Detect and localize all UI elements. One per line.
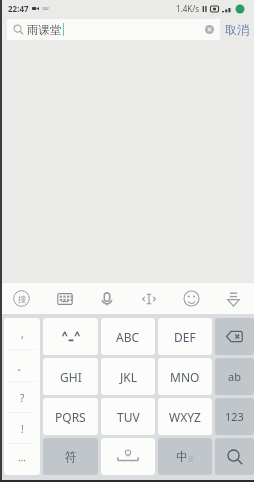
button[interactable]: Move cursor xyxy=(128,283,170,314)
staticText: TUV xyxy=(117,409,140,425)
staticText: 22:47 xyxy=(8,3,29,14)
staticText: WXYZ xyxy=(169,409,201,425)
button[interactable]: Clear text xyxy=(203,23,216,36)
button[interactable]: Keyboard layout xyxy=(43,283,86,314)
staticText: 1.4K/s xyxy=(176,3,200,14)
button[interactable]: , xyxy=(4,318,40,350)
staticText: , xyxy=(21,327,24,341)
button[interactable]: WXYZ xyxy=(158,398,212,435)
staticText: 符 xyxy=(65,449,77,464)
staticText: JKL xyxy=(120,369,137,385)
staticText: 搜 xyxy=(18,294,26,304)
staticText: ab xyxy=(228,369,241,384)
button[interactable] xyxy=(101,438,155,475)
staticText: 123 xyxy=(225,409,244,424)
staticText: DEF xyxy=(174,329,196,345)
button[interactable]: ABC xyxy=(101,318,155,355)
staticText: GHI xyxy=(60,369,82,385)
button[interactable]: 。 xyxy=(4,350,40,382)
button[interactable]: JKL xyxy=(101,358,155,395)
button[interactable]: GHI xyxy=(43,358,98,395)
button[interactable]: PQRS xyxy=(43,398,98,435)
button[interactable]: 中 xyxy=(158,438,212,475)
button[interactable]: bksp xyxy=(215,318,254,355)
button[interactable]: 123 xyxy=(215,398,254,435)
button[interactable]: MNO xyxy=(158,358,212,395)
button[interactable]: ? xyxy=(4,382,40,413)
button[interactable]: Emoji xyxy=(170,283,212,314)
button[interactable]: Input method xyxy=(0,283,43,314)
button[interactable]: Hide keyboard xyxy=(212,283,254,314)
button[interactable] xyxy=(43,318,98,355)
staticText: 雨课堂 xyxy=(27,23,62,37)
button[interactable]: Voice input xyxy=(86,283,128,314)
button[interactable]: search xyxy=(215,438,254,475)
staticText: 中 xyxy=(176,449,188,464)
button[interactable]: 符 xyxy=(43,438,98,475)
button[interactable]: ab xyxy=(215,358,254,395)
staticText: ? xyxy=(20,391,25,405)
button[interactable]: 取消 xyxy=(217,16,254,44)
button[interactable]: ··· xyxy=(4,444,40,475)
button[interactable]: TUV xyxy=(101,398,155,435)
staticText: 取消 xyxy=(225,22,249,37)
staticText: ABC xyxy=(116,329,140,345)
staticText: PQRS xyxy=(55,409,86,425)
staticText: 。 xyxy=(17,360,27,373)
button[interactable]: 雨课堂 xyxy=(7,19,220,40)
staticText: 英 xyxy=(188,455,194,463)
button[interactable]: DEF xyxy=(158,318,212,355)
staticText: ! xyxy=(21,422,24,436)
button[interactable]: ! xyxy=(4,413,40,444)
staticText: MNO xyxy=(170,369,200,385)
staticText: ··· xyxy=(18,453,27,467)
